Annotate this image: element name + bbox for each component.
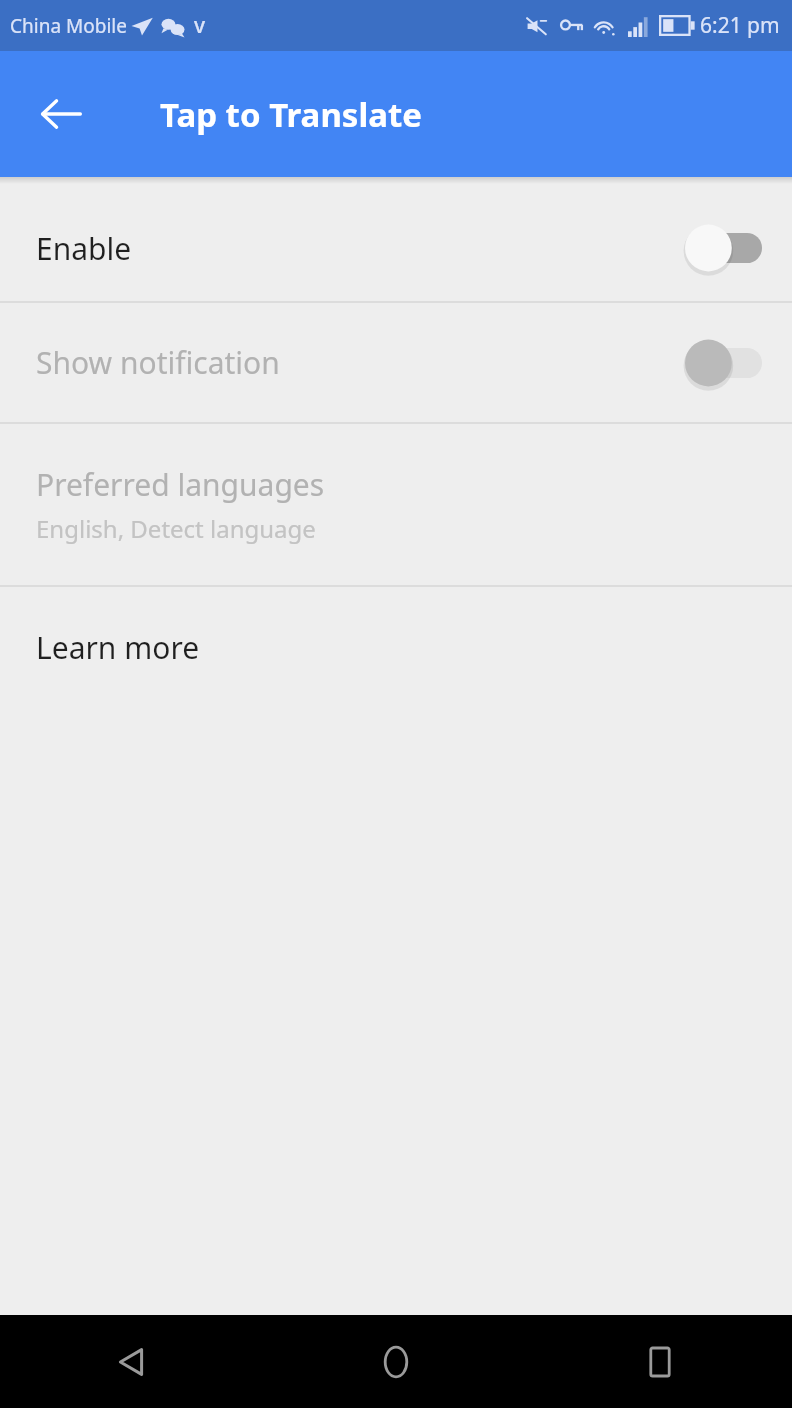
button[interactable]: Enable (0, 195, 792, 301)
staticText: Enable (36, 228, 684, 269)
staticText: China Mobile (10, 13, 127, 39)
staticText: Learn more (36, 627, 200, 668)
button[interactable]: Show notification (0, 303, 792, 422)
button[interactable]: Navigate up (18, 71, 104, 157)
staticText: Show notification (36, 342, 684, 383)
staticText: Preferred languages (36, 464, 325, 505)
staticText: 6:21 pm (700, 11, 780, 40)
button[interactable]: Preferred languages (0, 424, 792, 585)
staticText: v (194, 11, 206, 40)
button[interactable]: Recent apps (617, 1319, 703, 1405)
button[interactable]: Home (353, 1319, 439, 1405)
staticText: Tap to Translate (160, 92, 423, 137)
staticText: English, Detect language (36, 512, 316, 545)
button[interactable]: Back (89, 1319, 175, 1405)
button[interactable]: Learn more (0, 587, 792, 707)
